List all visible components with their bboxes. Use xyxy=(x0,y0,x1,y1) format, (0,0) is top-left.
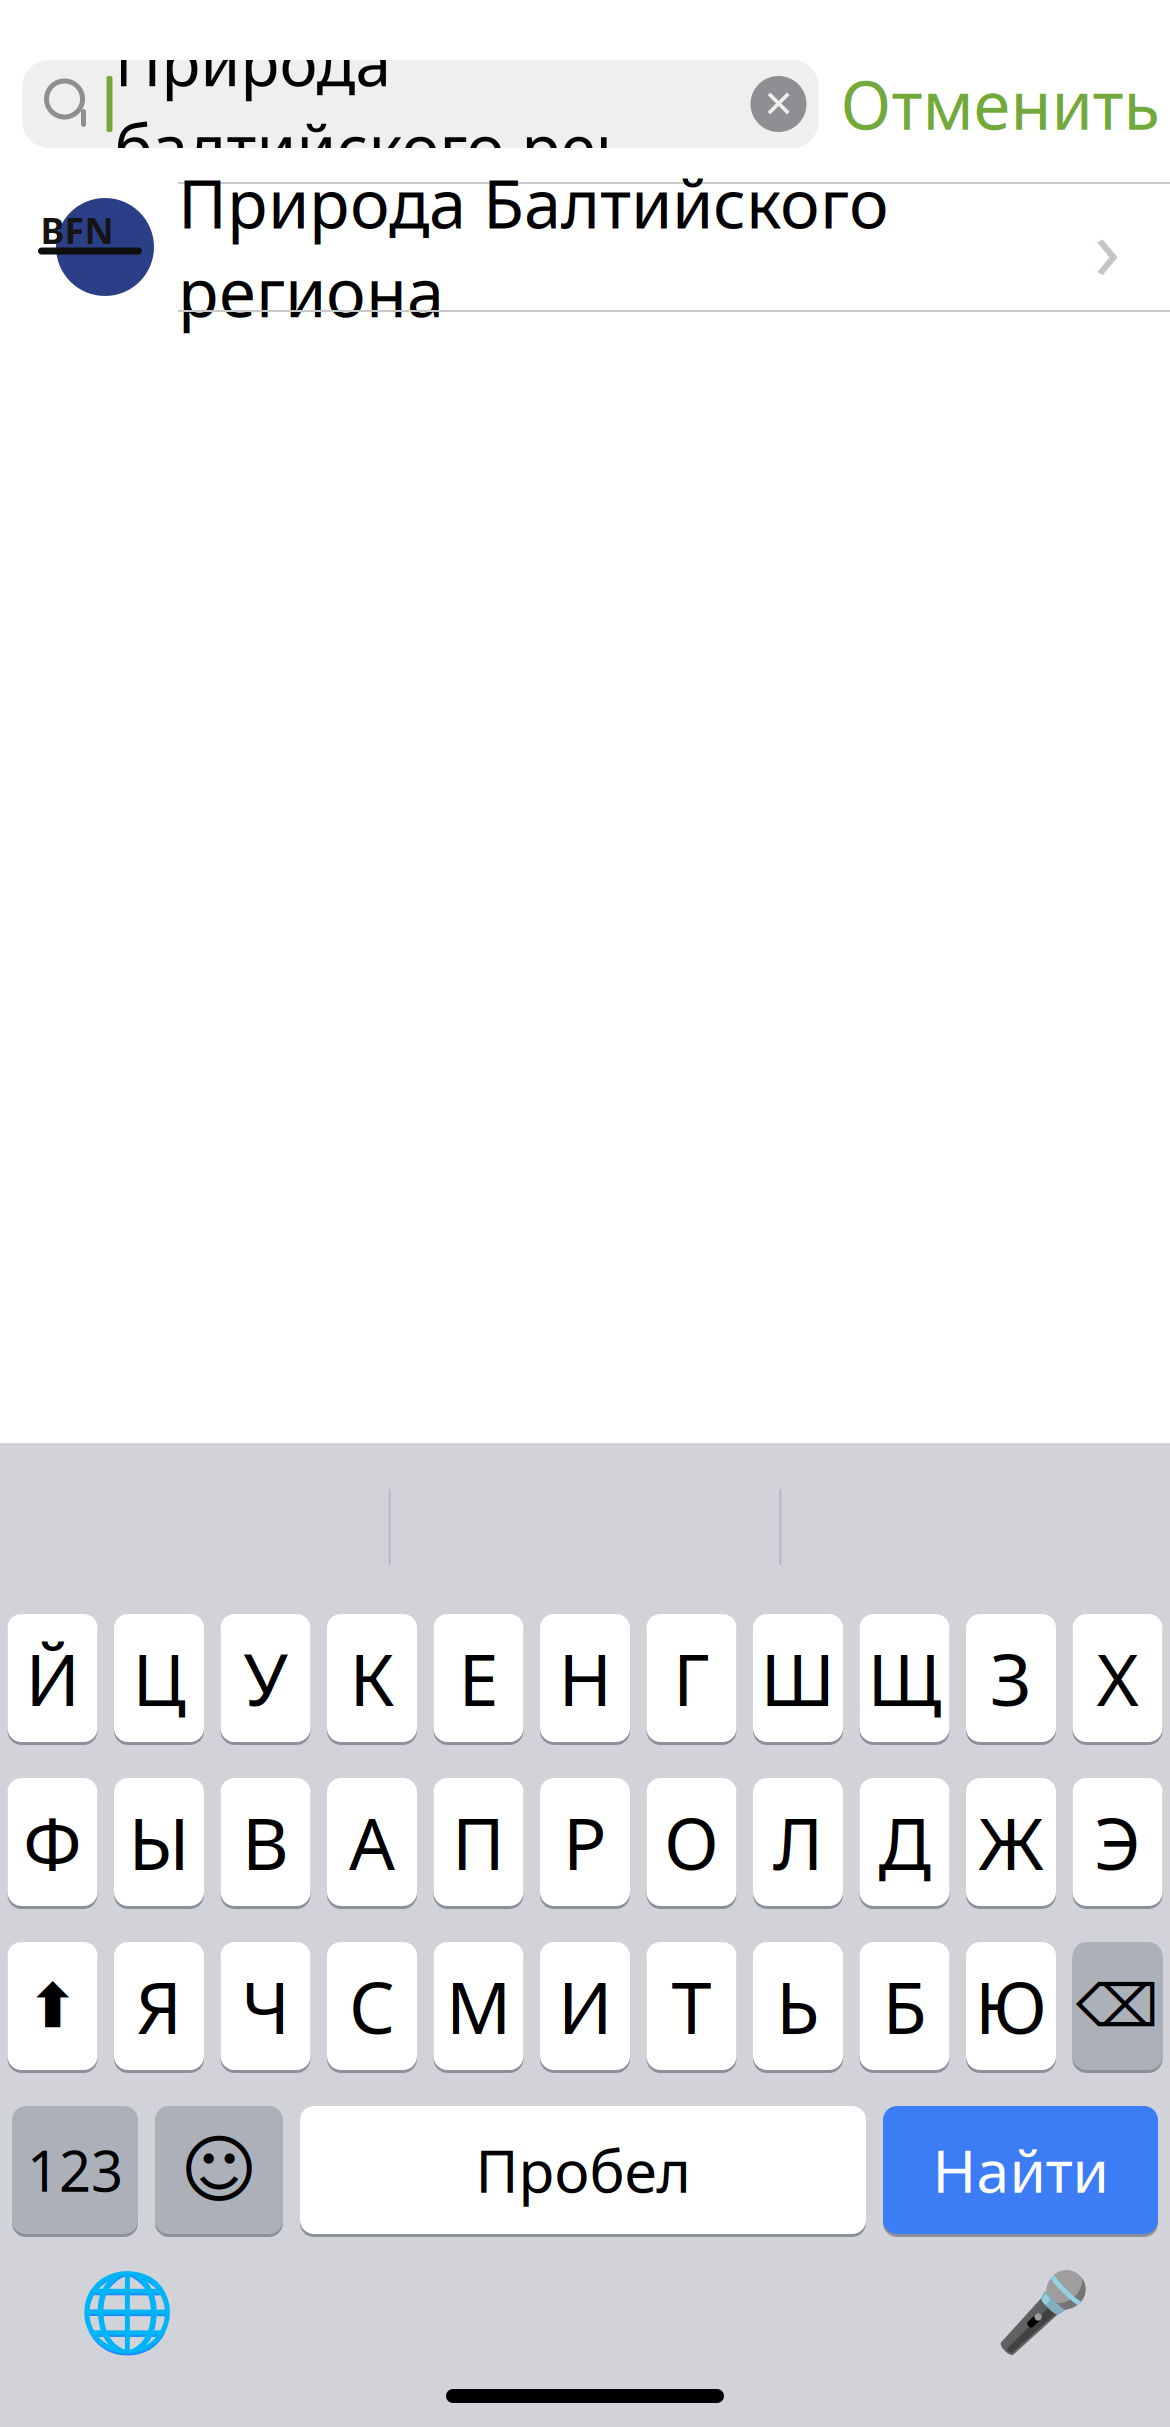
staticText: И xyxy=(558,1958,612,2054)
staticText: З xyxy=(990,1630,1032,1726)
button[interactable]: Щ xyxy=(859,1611,949,1745)
button[interactable]: А xyxy=(327,1775,417,1909)
staticText: Н xyxy=(558,1630,611,1726)
button[interactable]: Emoji xyxy=(155,2103,283,2237)
button[interactable]: Ж xyxy=(966,1775,1056,1909)
staticText: Й xyxy=(25,1630,79,1726)
staticText: Р xyxy=(563,1794,607,1890)
button[interactable]: С xyxy=(327,1939,417,2073)
staticText: 🎤 xyxy=(995,2269,1091,2357)
button[interactable]: З xyxy=(966,1611,1056,1745)
button[interactable]: Ц xyxy=(114,1611,204,1745)
button[interactable]: Dictate xyxy=(988,2258,1098,2368)
button[interactable]: Г xyxy=(646,1611,736,1745)
staticText: Ф xyxy=(23,1794,82,1890)
button[interactable]: В xyxy=(220,1775,310,1909)
staticText: BFN xyxy=(40,206,113,254)
staticText: ⬆ xyxy=(27,1971,78,2041)
button[interactable]: Ю xyxy=(966,1939,1056,2073)
staticText: Ч xyxy=(241,1958,289,2054)
staticText: Я xyxy=(136,1958,182,2054)
staticText: Ш xyxy=(760,1630,835,1726)
button[interactable]: Д xyxy=(859,1775,949,1909)
button[interactable]: Л xyxy=(753,1775,843,1909)
staticText: Щ xyxy=(867,1630,941,1726)
button[interactable]: Х xyxy=(1072,1611,1162,1745)
staticText: Природа балтийского реı xyxy=(114,19,612,189)
staticText: С xyxy=(349,1958,395,2054)
staticText: Пробел xyxy=(475,2131,690,2209)
staticText: Д xyxy=(878,1794,930,1890)
staticText: У xyxy=(243,1630,287,1726)
button[interactable]: Ч xyxy=(220,1939,310,2073)
staticText: ☺ xyxy=(180,2128,258,2212)
staticText: М xyxy=(446,1958,511,2054)
button[interactable]: О xyxy=(646,1775,736,1909)
button[interactable]: Numbers xyxy=(12,2103,138,2237)
staticText: Ж xyxy=(978,1794,1043,1890)
staticText: П xyxy=(452,1794,505,1890)
staticText: В xyxy=(242,1794,289,1890)
button[interactable]: Я xyxy=(114,1939,204,2073)
staticText: О xyxy=(664,1794,719,1890)
staticText: Т xyxy=(671,1958,711,2054)
button[interactable]: Delete xyxy=(1072,1939,1162,2073)
button[interactable]: Найти xyxy=(883,2103,1158,2237)
button[interactable]: Р xyxy=(540,1775,630,1909)
button[interactable]: Б xyxy=(859,1939,949,2073)
button[interactable]: BFN xyxy=(0,184,1170,310)
button[interactable]: П xyxy=(433,1775,523,1909)
button[interactable]: Й xyxy=(7,1611,97,1745)
button[interactable]: Э xyxy=(1072,1775,1162,1909)
staticText: Е xyxy=(458,1630,498,1726)
button[interactable]: Next keyboard xyxy=(72,2258,182,2368)
staticText: Отменить xyxy=(840,60,1159,148)
staticText: Л xyxy=(773,1794,823,1890)
button[interactable]: Ы xyxy=(114,1775,204,1909)
button[interactable]: У xyxy=(220,1611,310,1745)
button[interactable]: Ш xyxy=(753,1611,843,1745)
staticText: › xyxy=(1094,190,1120,304)
staticText: Х xyxy=(1096,1630,1138,1726)
button[interactable]: Clear text xyxy=(738,64,818,144)
staticText: Г xyxy=(673,1630,710,1726)
button[interactable]: Е xyxy=(433,1611,523,1745)
button[interactable]: Пробел xyxy=(300,2103,866,2237)
staticText: Природа Балтийского региона xyxy=(178,158,889,336)
staticText: 123 xyxy=(27,2133,123,2207)
button[interactable]: Т xyxy=(646,1939,736,2073)
button[interactable]: Ь xyxy=(753,1939,843,2073)
staticText: 🌐 xyxy=(79,2269,175,2357)
staticText: А xyxy=(349,1794,395,1890)
staticText: К xyxy=(349,1630,394,1726)
button[interactable]: Shift xyxy=(7,1939,97,2073)
staticText: ✕ xyxy=(763,83,794,125)
staticText: Э xyxy=(1094,1794,1141,1890)
staticText: Ю xyxy=(975,1958,1047,2054)
staticText: Найти xyxy=(932,2131,1108,2209)
staticText: ⌫ xyxy=(1076,1973,1159,2039)
staticText: Ы xyxy=(128,1794,189,1890)
button[interactable]: И xyxy=(540,1939,630,2073)
staticText: Ц xyxy=(132,1630,185,1726)
staticText: Ь xyxy=(776,1958,820,2054)
button[interactable]: М xyxy=(433,1939,523,2073)
staticText: Б xyxy=(882,1958,926,2054)
button[interactable]: Ф xyxy=(7,1775,97,1909)
button[interactable]: Отменить xyxy=(818,58,1170,150)
button[interactable]: Н xyxy=(540,1611,630,1745)
button[interactable]: К xyxy=(327,1611,417,1745)
